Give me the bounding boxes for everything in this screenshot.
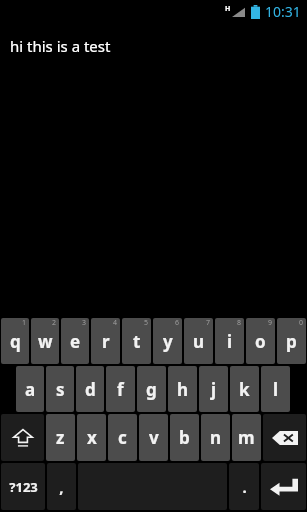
staticText: 7 — [206, 318, 211, 328]
staticText: l — [273, 378, 279, 401]
button[interactable]: y — [153, 318, 182, 364]
button[interactable]: l — [261, 366, 290, 412]
staticText: hi this is a test — [10, 36, 111, 56]
staticText: 2 — [52, 318, 57, 328]
button[interactable]: f — [106, 366, 135, 412]
button[interactable]: p — [277, 318, 306, 364]
staticText: 10:31 — [265, 2, 301, 21]
button[interactable]: r — [91, 318, 120, 364]
staticText: n — [210, 426, 222, 449]
staticText: v — [149, 426, 159, 449]
staticText: g — [146, 378, 157, 401]
button[interactable]: t — [122, 318, 151, 364]
staticText: o — [255, 330, 266, 353]
staticText: a — [25, 378, 36, 401]
staticText: c — [118, 426, 127, 449]
button[interactable]: u — [184, 318, 213, 364]
staticText: s — [56, 378, 65, 401]
staticText: r — [102, 330, 110, 353]
button[interactable]: m — [232, 414, 261, 461]
button[interactable]: v — [139, 414, 168, 461]
staticText: t — [133, 330, 141, 353]
button[interactable]: q — [1, 318, 29, 364]
button[interactable]: a — [16, 366, 44, 412]
staticText: h — [177, 378, 189, 401]
button[interactable]: b — [170, 414, 199, 461]
staticText: x — [87, 426, 97, 449]
staticText: 5 — [144, 318, 149, 328]
button[interactable]: ?123 — [1, 463, 45, 510]
staticText: y — [163, 330, 173, 353]
button[interactable]: i — [215, 318, 244, 364]
staticText: e — [70, 330, 81, 353]
staticText: ?123 — [9, 478, 38, 496]
staticText: 8 — [237, 318, 242, 328]
staticText: 3 — [82, 318, 87, 328]
button[interactable]: c — [108, 414, 137, 461]
button[interactable]: n — [201, 414, 230, 461]
button[interactable]: Enter — [261, 463, 306, 510]
staticText: p — [286, 330, 297, 353]
button[interactable]: d — [76, 366, 104, 412]
staticText: z — [56, 426, 65, 449]
staticText: d — [85, 378, 96, 401]
button[interactable]: w — [31, 318, 59, 364]
staticText: 6 — [175, 318, 180, 328]
staticText: . — [242, 477, 247, 497]
button[interactable]: Backspace — [263, 414, 306, 461]
button[interactable]: j — [199, 366, 228, 412]
button[interactable]: hi this is a test — [0, 22, 307, 316]
staticText: w — [38, 330, 53, 353]
button[interactable]: e — [61, 318, 89, 364]
staticText: 4 — [113, 318, 118, 328]
staticText: u — [193, 330, 205, 353]
staticText: , — [59, 477, 64, 497]
staticText: 0 — [299, 318, 304, 328]
button[interactable]: , — [47, 463, 76, 510]
staticText: f — [117, 378, 124, 401]
button[interactable]: k — [230, 366, 259, 412]
staticText: m — [238, 426, 255, 449]
staticText: k — [239, 378, 250, 401]
button[interactable]: . — [229, 463, 259, 510]
button[interactable]: Shift — [1, 414, 44, 461]
staticText: 9 — [268, 318, 273, 328]
staticText: b — [179, 426, 190, 449]
button[interactable]: o — [246, 318, 275, 364]
button[interactable]: s — [46, 366, 74, 412]
staticText: 1 — [22, 318, 27, 328]
button[interactable]: z — [46, 414, 75, 461]
button[interactable]: h — [168, 366, 197, 412]
staticText: q — [10, 330, 21, 353]
staticText: j — [211, 378, 217, 401]
staticText: H — [225, 4, 231, 14]
staticText: i — [227, 330, 233, 353]
button[interactable]: x — [77, 414, 106, 461]
button[interactable]: g — [137, 366, 166, 412]
